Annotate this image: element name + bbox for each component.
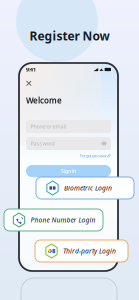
button[interactable]: Close bbox=[23, 78, 34, 89]
staticText: 9:41 bbox=[26, 66, 36, 73]
staticText: Sign in bbox=[61, 167, 76, 175]
button[interactable]: Phone Number Login bbox=[4, 209, 103, 231]
staticText: Register Now bbox=[29, 28, 109, 44]
staticText: Phone Number Login bbox=[30, 216, 95, 224]
staticText: Forgot password? bbox=[80, 153, 111, 158]
staticText: Welcome bbox=[26, 95, 62, 106]
button[interactable]: Forgot password? bbox=[26, 152, 111, 159]
staticText: Phone or email bbox=[30, 123, 65, 130]
staticText: Biometric Login bbox=[64, 184, 112, 192]
button[interactable]: Biometric Login bbox=[36, 177, 134, 199]
staticText: Third-party Login bbox=[63, 247, 116, 255]
button[interactable]: Sign in bbox=[26, 165, 111, 177]
button[interactable]: Third-party Login bbox=[35, 240, 128, 262]
staticText: Password bbox=[30, 140, 54, 147]
